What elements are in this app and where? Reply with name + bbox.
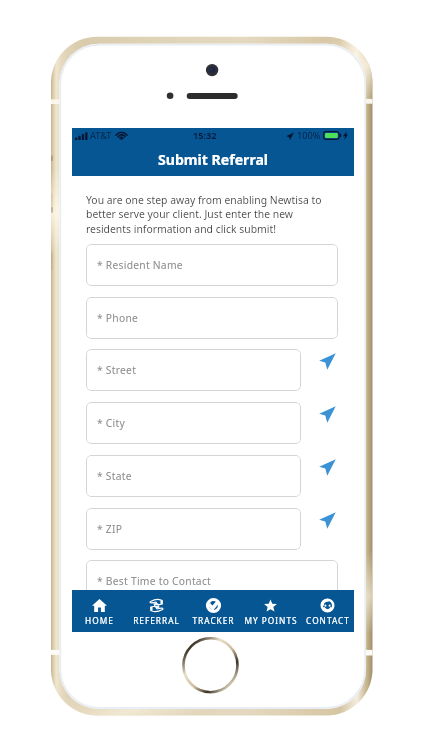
button[interactable]: REFERRAL: [126, 590, 186, 632]
staticText: * State: [97, 469, 132, 483]
button[interactable]: * Best Time to Contact: [86, 560, 338, 602]
staticText: TRACKER: [192, 615, 235, 626]
button[interactable]: Use current location: [301, 349, 338, 391]
staticText: CONTACT: [306, 615, 350, 626]
button[interactable]: * Resident Name: [86, 244, 338, 286]
button[interactable]: * Phone: [86, 297, 338, 339]
button[interactable]: * City: [86, 402, 301, 444]
button[interactable]: Use current location: [301, 508, 338, 550]
staticText: Submit Referral: [158, 150, 269, 169]
staticText: 100%: [297, 129, 321, 142]
staticText: * City: [97, 416, 125, 430]
staticText: * Best Time to Contact: [97, 574, 212, 588]
staticText: * Street: [97, 363, 137, 377]
button[interactable]: TRACKER: [186, 590, 240, 632]
button[interactable]: MY POINTS: [240, 590, 301, 632]
button[interactable]: Use current location: [301, 402, 338, 444]
button[interactable]: * State: [86, 455, 301, 497]
button[interactable]: * Street: [86, 349, 301, 391]
staticText: * Phone: [97, 311, 139, 325]
button[interactable]: * ZIP: [86, 508, 301, 550]
staticText: You are one step away from enabling Newt…: [86, 193, 338, 237]
staticText: AT&T: [90, 129, 112, 142]
staticText: HOME: [85, 615, 114, 626]
button[interactable]: CONTACT: [301, 590, 354, 632]
staticText: 15:32: [193, 129, 217, 142]
button[interactable]: HOME: [72, 590, 126, 632]
staticText: * Resident Name: [97, 258, 183, 272]
staticText: REFERRAL: [133, 615, 180, 626]
staticText: * ZIP: [97, 522, 123, 536]
button[interactable]: Use current location: [301, 455, 338, 497]
staticText: MY POINTS: [244, 615, 298, 626]
